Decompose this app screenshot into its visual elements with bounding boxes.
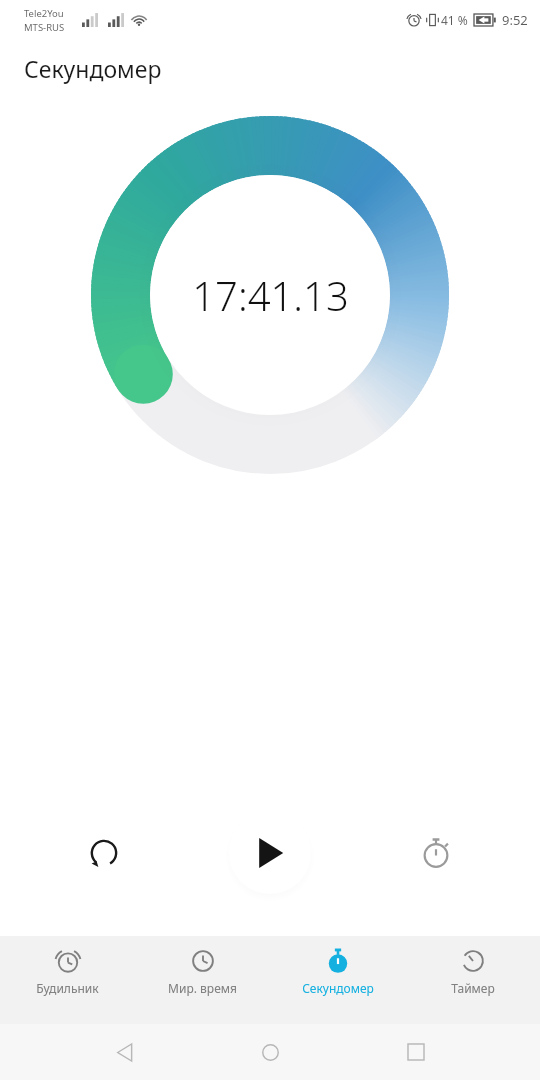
button[interactable]: Назад [102,1030,146,1074]
button[interactable]: Главный экран [248,1030,292,1074]
staticText: MTS-RUS [24,21,65,34]
staticText: Tele2You [24,7,64,20]
button[interactable]: Будильник [0,936,135,996]
button[interactable]: Мир. время [135,936,270,996]
staticText: 41 % [441,12,468,28]
button[interactable]: Секундомер [270,936,405,996]
staticText: 17:41.13 [192,268,349,322]
staticText: Секундомер [302,980,374,996]
staticText: Таймер [451,980,495,996]
button[interactable]: Старт [229,812,311,894]
button[interactable]: Таймер [405,936,540,996]
staticText: Мир. время [168,980,237,996]
button[interactable]: Сброс [78,827,130,879]
staticText: Секундомер [24,53,162,84]
button[interactable]: Недавние приложения [394,1030,438,1074]
staticText: 9:52 [502,11,528,29]
staticText: Будильник [36,980,99,996]
button[interactable]: Круг [410,827,462,879]
